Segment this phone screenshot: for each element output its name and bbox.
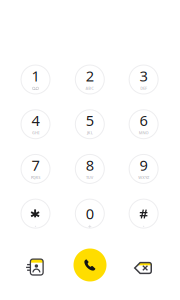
staticText: 4 [31,111,39,130]
button[interactable]: 9 [121,147,167,191]
button[interactable]: 1 [12,57,58,101]
button[interactable]: 8 [67,147,113,191]
staticText: 2 [86,66,94,85]
staticText: ABC [85,85,94,91]
staticText: MNO [139,130,148,135]
staticText: 7 [31,155,39,175]
staticText: WXYZ [138,175,149,180]
staticText: GHI [32,130,39,135]
staticText: 0 [86,204,94,223]
staticText: TUV [86,175,94,180]
staticText: PQRS [31,175,40,180]
button[interactable]: Delete [123,248,163,288]
button[interactable]: 6 [121,102,167,146]
staticText: 5 [86,111,94,130]
staticText: 9 [140,155,148,175]
button[interactable]: 7 [12,147,58,191]
button[interactable]: 5 [67,102,113,146]
staticText: 1 [31,66,39,85]
button[interactable]: Contacts [16,246,56,286]
button[interactable] [12,192,58,236]
button[interactable]: 4 [12,102,58,146]
button[interactable]: 0 [67,192,113,236]
staticText: 3 [140,66,148,85]
staticText: 6 [140,111,148,130]
staticText: 8 [86,155,94,175]
staticText: JKL [87,130,93,135]
staticText: DEF [140,85,147,91]
button[interactable]: 3 [121,57,167,101]
button[interactable]: Call [68,243,112,287]
button[interactable]: 2 [67,57,113,101]
button[interactable] [121,192,167,236]
